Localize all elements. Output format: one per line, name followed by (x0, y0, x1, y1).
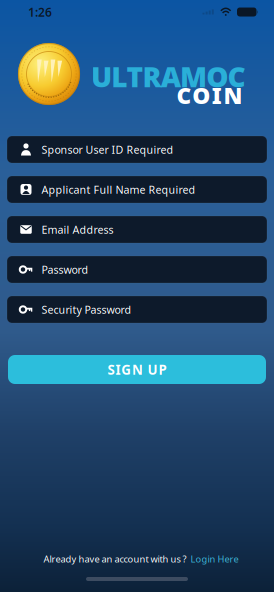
staticText: Applicant Full Name Required (41, 182, 195, 197)
staticText: COIN (177, 80, 242, 110)
staticText: 1:26 (28, 4, 52, 20)
button[interactable]: Security Password (7, 296, 267, 323)
staticText: SIGN UP (108, 361, 166, 378)
button[interactable]: Login Here (190, 553, 238, 565)
button[interactable]: Sponsor User ID Required (7, 136, 267, 163)
staticText: Password (41, 262, 88, 277)
staticText: Login Here (190, 553, 238, 565)
button[interactable]: SIGN UP (8, 355, 266, 384)
staticText: Sponsor User ID Required (41, 142, 173, 157)
staticText: Email Address (41, 222, 113, 237)
staticText: ULTRAMOC (91, 58, 245, 95)
button[interactable]: Email Address (7, 216, 267, 243)
button[interactable]: Applicant Full Name Required (7, 176, 267, 203)
staticText: Security Password (41, 302, 131, 317)
button[interactable]: Password (7, 256, 267, 283)
staticText: Already have an account with us ? (43, 553, 186, 565)
